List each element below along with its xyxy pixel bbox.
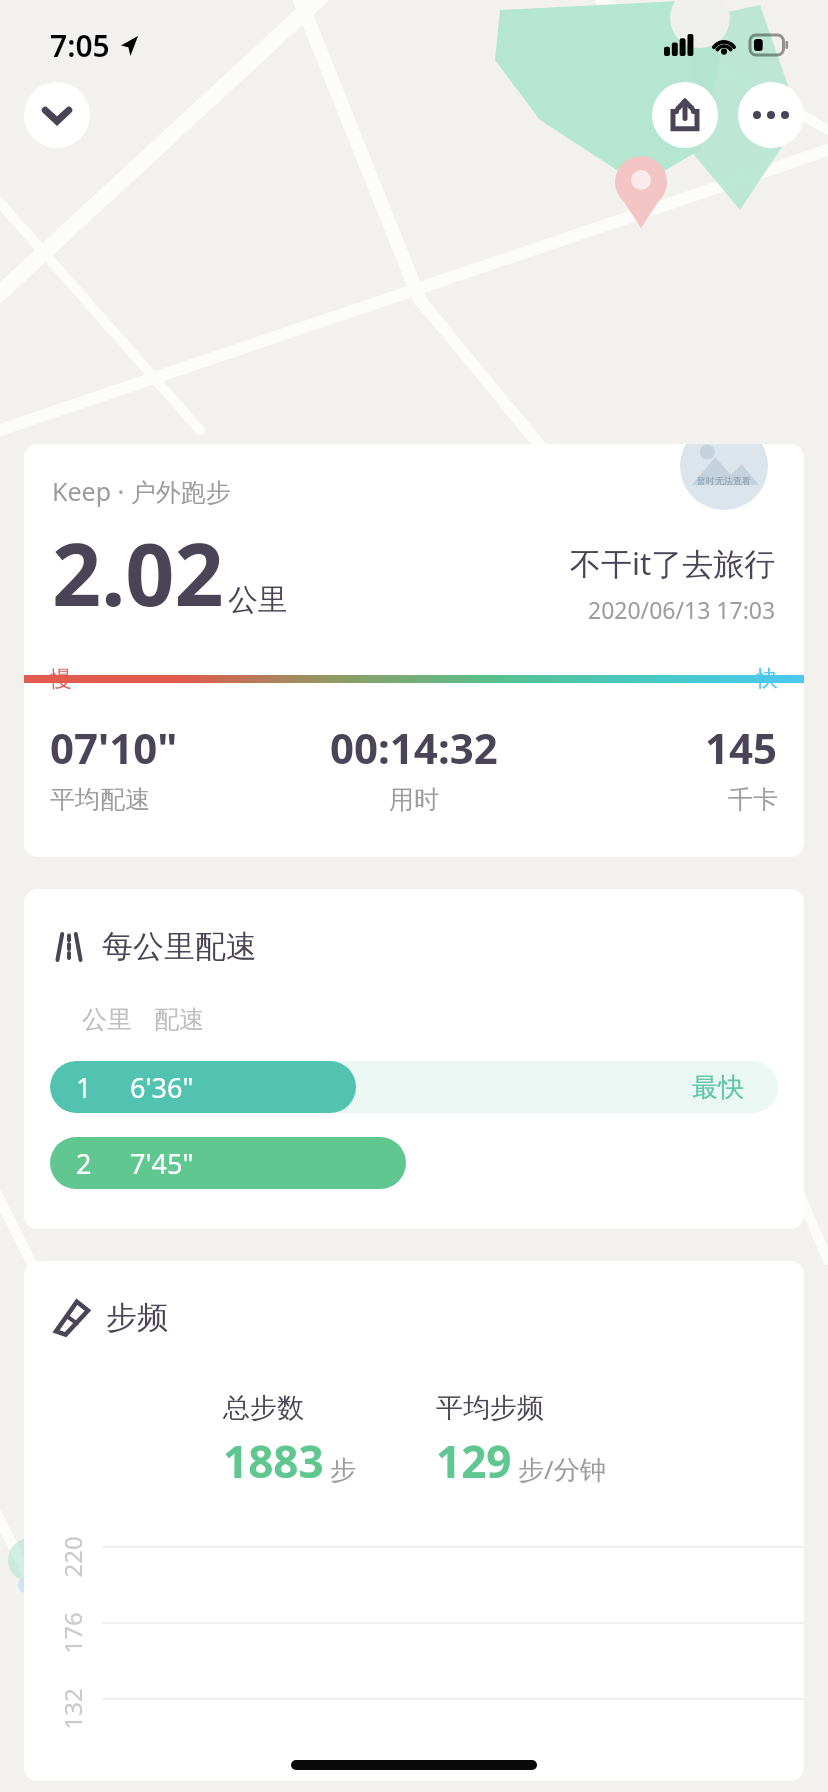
staticText: Keep · 户外跑步	[52, 474, 231, 508]
staticText: 千卡	[728, 784, 778, 815]
staticText: 暂时无法查看	[697, 475, 751, 486]
staticText: 2	[76, 1145, 92, 1182]
staticText: 配速	[154, 1004, 204, 1035]
staticText: 145	[705, 719, 778, 776]
staticText: 7:05	[50, 25, 110, 66]
staticText: 慢	[50, 665, 72, 693]
button[interactable]: User avatar	[680, 444, 768, 510]
staticText: 平均步频	[436, 1391, 544, 1425]
button[interactable]: 1	[50, 1061, 778, 1113]
button[interactable]: 2	[50, 1137, 406, 1189]
button[interactable]: 步频	[24, 1261, 804, 1781]
staticText: 1	[76, 1069, 92, 1106]
staticText: 7'45"	[130, 1145, 194, 1182]
staticText: 用时	[389, 784, 439, 815]
staticText: 最快	[692, 1071, 744, 1104]
staticText: 176	[55, 1611, 88, 1653]
staticText: 公里	[82, 1004, 132, 1035]
button[interactable]: 每公里配速	[24, 889, 804, 1229]
staticText: 步频	[106, 1298, 168, 1337]
staticText: 1883	[223, 1431, 324, 1491]
staticText: 2.02	[52, 514, 224, 631]
staticText: 不干it了去旅行	[570, 542, 776, 584]
staticText: 6'36"	[130, 1069, 194, 1106]
button[interactable]: Keep · 户外跑步	[24, 444, 804, 857]
button[interactable]: Collapse	[24, 82, 90, 148]
staticText: 快	[756, 665, 778, 693]
staticText: 129	[436, 1431, 512, 1491]
button[interactable]: Share	[652, 82, 718, 148]
staticText: 平均配速	[50, 784, 150, 815]
staticText: 步	[330, 1454, 356, 1487]
staticText: 132	[55, 1687, 88, 1729]
button[interactable]: More options	[738, 82, 804, 148]
staticText: 07'10"	[50, 719, 178, 776]
staticText: 步/分钟	[518, 1451, 606, 1487]
staticText: 2020/06/13 17:03	[588, 594, 776, 625]
staticText: 220	[55, 1535, 88, 1577]
staticText: 每公里配速	[102, 927, 257, 966]
staticText: 总步数	[223, 1391, 304, 1425]
staticText: 公里	[228, 581, 288, 619]
staticText: 00:14:32	[330, 719, 498, 776]
